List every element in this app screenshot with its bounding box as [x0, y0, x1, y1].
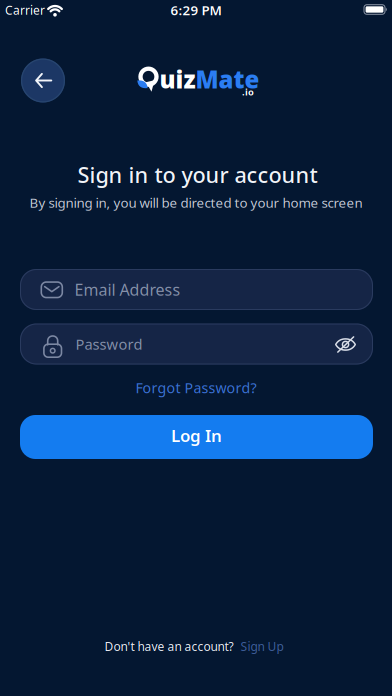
- button[interactable]: Show password: [327, 326, 363, 362]
- staticText: Email Address: [74, 279, 180, 300]
- button[interactable]: Forgot Password?: [135, 378, 256, 397]
- staticText: 6:29 PM: [170, 1, 221, 19]
- button[interactable]: Sign Up: [240, 638, 283, 654]
- staticText: Sign in to your account: [77, 160, 317, 189]
- staticText: uiz: [159, 63, 195, 95]
- staticText: Password: [75, 334, 142, 354]
- staticText: Log In: [171, 424, 222, 447]
- staticText: Don't have an account?: [104, 638, 233, 654]
- staticText: Carrier: [5, 2, 45, 18]
- staticText: Mate: [195, 63, 259, 95]
- staticText: .io: [242, 86, 254, 98]
- staticText: By signing in, you will be directed to y…: [29, 194, 362, 211]
- staticText: Sign Up: [240, 638, 283, 654]
- staticText: Forgot Password?: [135, 378, 256, 397]
- button[interactable]: Back: [21, 58, 65, 102]
- button[interactable]: Log In: [20, 415, 373, 459]
